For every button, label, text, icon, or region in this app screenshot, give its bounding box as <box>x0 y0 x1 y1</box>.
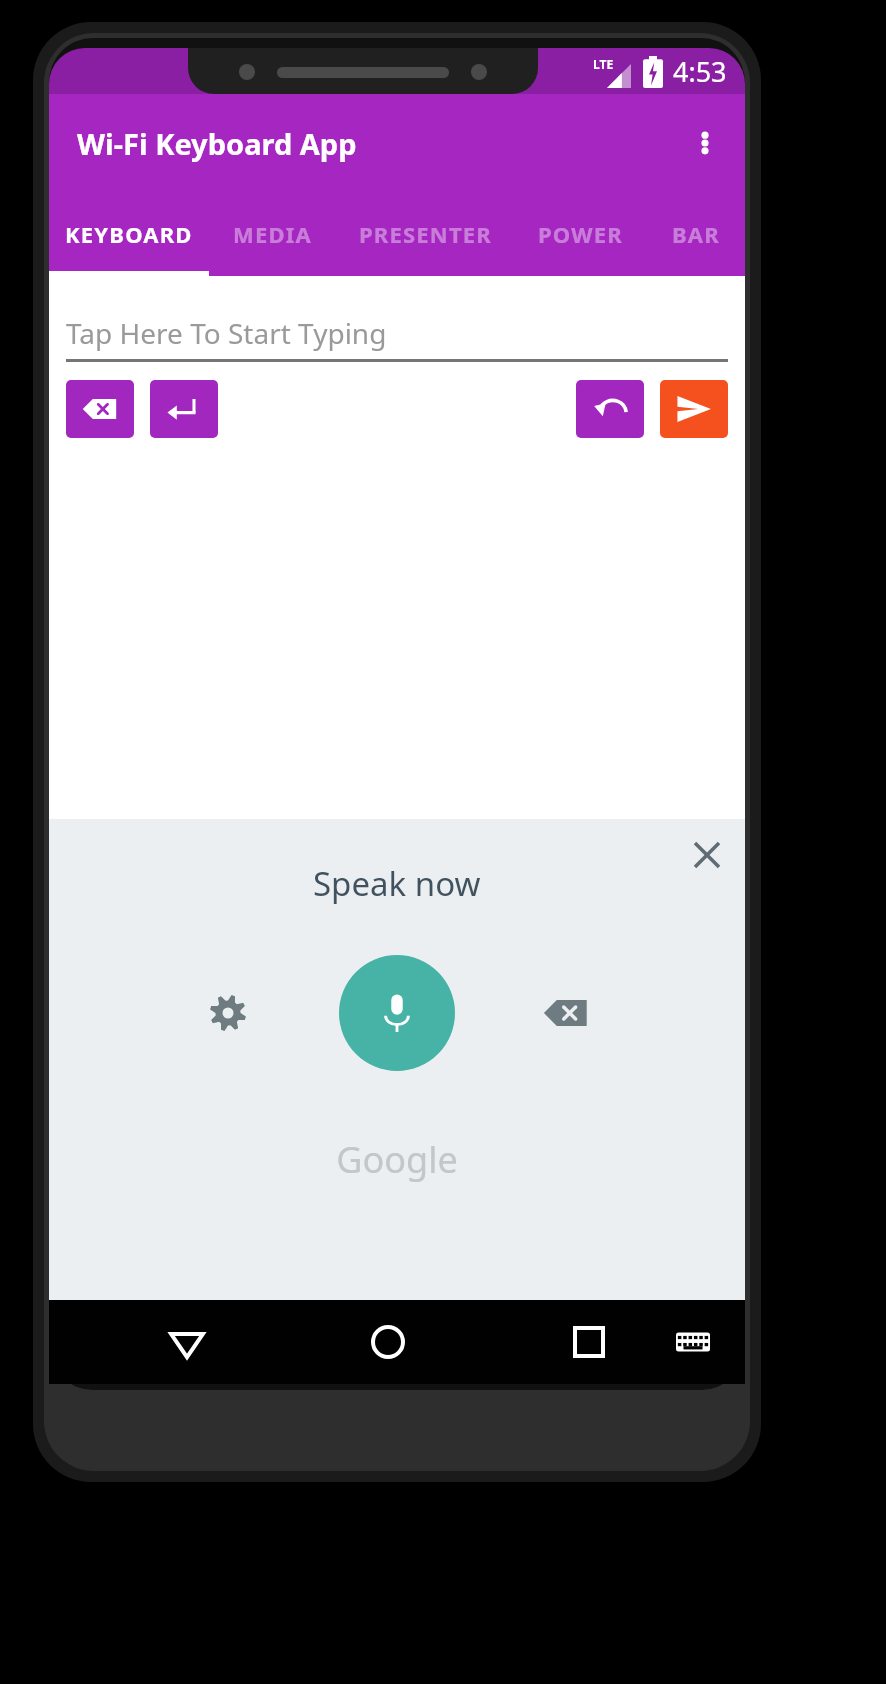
button[interactable]: Delete <box>529 976 603 1050</box>
button[interactable]: BAR <box>646 192 745 276</box>
staticText: POWER <box>538 219 623 249</box>
staticText: BAR <box>672 219 720 249</box>
staticText: 4:53 <box>673 53 727 90</box>
button[interactable]: POWER <box>514 192 646 276</box>
staticText: Wi-Fi Keyboard App <box>77 124 357 163</box>
button[interactable]: More options <box>677 115 733 171</box>
staticText: LTE <box>593 56 614 72</box>
staticText: Google <box>336 1135 458 1184</box>
button[interactable]: Microphone <box>339 955 455 1071</box>
staticText: MEDIA <box>233 219 312 249</box>
button[interactable]: Close <box>679 827 735 883</box>
staticText: Tap Here To Start Typing <box>66 314 387 352</box>
button[interactable]: Recent apps <box>551 1304 627 1380</box>
button[interactable]: Home <box>350 1304 426 1380</box>
button[interactable]: Settings <box>191 976 265 1050</box>
button[interactable]: Backspace <box>66 380 134 438</box>
staticText: Speak now <box>313 861 481 906</box>
button[interactable]: Switch keyboard <box>655 1304 731 1380</box>
button[interactable]: KEYBOARD <box>49 192 209 276</box>
button[interactable]: Back <box>149 1304 225 1380</box>
staticText: PRESENTER <box>359 219 492 249</box>
button[interactable]: Undo <box>576 380 644 438</box>
button[interactable]: Enter <box>150 380 218 438</box>
button[interactable]: PRESENTER <box>336 192 514 276</box>
staticText: KEYBOARD <box>65 219 193 249</box>
button[interactable]: Send <box>660 380 728 438</box>
button[interactable]: MEDIA <box>209 192 336 276</box>
button[interactable]: Tap Here To Start Typing <box>66 304 728 362</box>
